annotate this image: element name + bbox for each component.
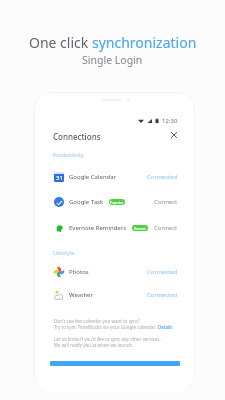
staticText: One click	[29, 33, 92, 52]
button[interactable]: Google Task	[45, 191, 185, 213]
staticText: Popular	[110, 200, 124, 205]
staticText: We will notify you at when we launch.	[54, 342, 134, 348]
button[interactable]: Continue	[50, 361, 180, 366]
staticText: Let us know if you'd like to sync any ot…	[54, 336, 161, 342]
button[interactable]: Details	[158, 324, 173, 330]
staticText: Evernote Reminders	[69, 224, 127, 232]
staticText: Connections	[53, 131, 101, 142]
button[interactable]: Close	[168, 129, 179, 140]
staticText: Productivity	[53, 151, 84, 158]
staticText: Don't see the calendar you want to sync?	[54, 318, 141, 324]
button[interactable]: 31	[45, 166, 185, 188]
staticText: Google Calendar	[69, 173, 117, 181]
staticText: Recent	[134, 226, 146, 231]
button[interactable]: Evernote Reminders	[45, 217, 185, 239]
staticText: Connect	[154, 224, 178, 232]
staticText: Connect	[154, 198, 178, 206]
staticText: Connected	[147, 173, 178, 181]
button[interactable]: Photos	[45, 261, 185, 283]
staticText: synchronization	[92, 33, 197, 52]
staticText: 31	[56, 174, 63, 182]
staticText: Weather	[69, 291, 93, 299]
staticText: Connected	[147, 268, 178, 276]
staticText: 12:30	[162, 117, 178, 125]
staticText: Google Task	[69, 198, 104, 206]
staticText: Connected	[147, 291, 178, 299]
staticText: Photos	[69, 268, 89, 276]
staticText: Single Login	[82, 53, 143, 67]
staticText: Lifestyle	[53, 249, 75, 256]
button[interactable]: Weather	[45, 284, 185, 306]
staticText: Try to sync TimeBlocks via your Google c…	[54, 324, 158, 330]
